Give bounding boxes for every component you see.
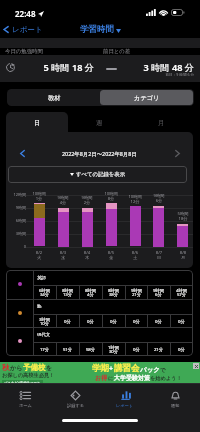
staticText: 前日との差 <box>103 48 131 55</box>
button[interactable]: Next week <box>171 147 183 159</box>
staticText: 12分 <box>123 199 147 205</box>
button[interactable]: 学習時間 <box>78 22 123 37</box>
staticText: 土 <box>123 255 147 260</box>
staticText: 3時間 <box>6 231 26 236</box>
staticText: 週 <box>96 119 103 127</box>
button[interactable]: レポート <box>0 23 49 36</box>
staticText: 金 <box>99 255 123 260</box>
staticText: 10時間 <box>99 191 123 197</box>
staticText: 講習会 <box>114 363 140 374</box>
staticText: 10時間 <box>27 191 51 197</box>
staticText: 0 <box>6 244 26 249</box>
staticText: 57分 <box>170 291 193 297</box>
staticText: 6時間 <box>33 287 56 293</box>
staticText: 18分 <box>171 216 193 222</box>
staticText: 通知 <box>171 403 180 408</box>
button[interactable]: カテゴリ <box>100 90 193 105</box>
staticText: 6時間 <box>6 218 26 223</box>
button[interactable]: 記録する <box>50 384 100 414</box>
staticText: 6分 <box>147 291 170 297</box>
staticText: 8時間 <box>56 287 79 293</box>
staticText: 8/2 <box>27 250 51 256</box>
button[interactable]: 日 <box>6 112 68 133</box>
staticText: パスナビ×高校生コース <box>4 380 41 385</box>
staticText: 2分 <box>75 200 99 206</box>
staticText: 12時間 <box>6 192 26 197</box>
button[interactable]: 現代文 <box>6 327 193 356</box>
button[interactable]: 塾 <box>6 299 193 328</box>
staticText: 0分 <box>125 318 148 324</box>
staticText: 0分 <box>79 318 102 324</box>
staticText: お探しの高校生必見！ <box>2 372 55 379</box>
staticText: 8/4 <box>75 250 99 256</box>
button[interactable]: Previous week <box>16 147 28 159</box>
staticText: 5時間 <box>171 211 193 217</box>
staticText: 水 <box>51 255 75 260</box>
staticText: 学期 <box>92 363 109 374</box>
staticText: 教材 <box>48 94 61 102</box>
staticText: 8分 <box>99 196 123 202</box>
staticText: すべての記録を表示 <box>76 171 126 178</box>
staticText: 8/6 <box>123 250 147 256</box>
button[interactable]: 2022年8月2日〜2022年8月8日 <box>30 146 169 160</box>
staticText: お得 <box>95 374 108 382</box>
staticText: 火 <box>27 255 51 260</box>
staticText: 0分 <box>170 346 193 352</box>
staticText: 51分 <box>56 346 79 352</box>
button[interactable]: 週 <box>68 112 130 133</box>
staticText: 英語 <box>37 275 46 281</box>
staticText: 4分 <box>51 200 75 206</box>
staticText: 8/8 <box>171 250 193 256</box>
staticText: 9時間 <box>51 195 75 201</box>
staticText: 58分 <box>79 346 102 352</box>
staticText: 今日の勉強時間 <box>5 48 43 55</box>
button[interactable]: 秋 <box>0 362 200 384</box>
staticText: 8時間 <box>79 287 102 293</box>
staticText: 6分 <box>147 198 171 204</box>
staticText: 前日：9 時間 6 分 <box>120 72 194 77</box>
button[interactable]: すべての記録を表示 <box>8 166 187 183</box>
staticText: レポート <box>12 25 43 34</box>
staticText: 22:48 <box>15 8 36 19</box>
staticText: 10分 <box>33 320 56 326</box>
staticText: 塾 <box>37 304 42 310</box>
button[interactable]: レポート <box>100 384 150 414</box>
button[interactable]: ホーム <box>0 384 50 414</box>
staticText: 30分 <box>102 348 125 354</box>
staticText: 9時間 <box>147 287 170 293</box>
staticText: 1分 <box>27 196 51 202</box>
staticText: 記録する <box>67 403 84 408</box>
staticText: 現代文 <box>37 332 51 338</box>
staticText: 1時間 <box>102 344 125 350</box>
button[interactable]: 英語 <box>6 270 193 299</box>
staticText: 日 <box>34 119 41 127</box>
staticText: 9時間 <box>75 195 99 201</box>
staticText: 3時間 <box>33 316 56 322</box>
staticText: カテゴリ <box>134 94 160 102</box>
staticText: 8/5 <box>99 250 123 256</box>
staticText: 9時間 <box>125 287 148 293</box>
staticText: 8/7 <box>147 250 171 256</box>
staticText: 38分 <box>102 291 125 297</box>
staticText: 0分 <box>102 318 125 324</box>
staticText: レポート <box>116 403 134 408</box>
staticText: 秋 <box>2 363 10 372</box>
staticText: 9時間 <box>147 193 171 199</box>
staticText: 3 時間 48 分 <box>120 61 194 74</box>
staticText: に <box>108 375 114 382</box>
staticText: 0分 <box>125 346 148 352</box>
staticText: 大学受験対策 <box>114 374 150 382</box>
staticText: ホーム <box>19 403 32 408</box>
staticText: 月 <box>171 255 193 260</box>
button[interactable]: 通知 <box>150 384 200 414</box>
staticText: 2022年8月2日〜2022年8月8日 <box>62 150 137 157</box>
staticText: 日 <box>147 255 171 260</box>
staticText: 5 時間 18 分 <box>16 61 94 74</box>
staticText: 予備校 <box>23 363 46 372</box>
button[interactable]: 月 <box>130 112 193 133</box>
button[interactable]: 教材 <box>8 90 100 105</box>
staticText: で <box>160 367 166 374</box>
staticText: 4時間 <box>170 287 193 293</box>
button[interactable]: Close ad <box>193 363 199 369</box>
staticText: 0分 <box>170 318 193 324</box>
